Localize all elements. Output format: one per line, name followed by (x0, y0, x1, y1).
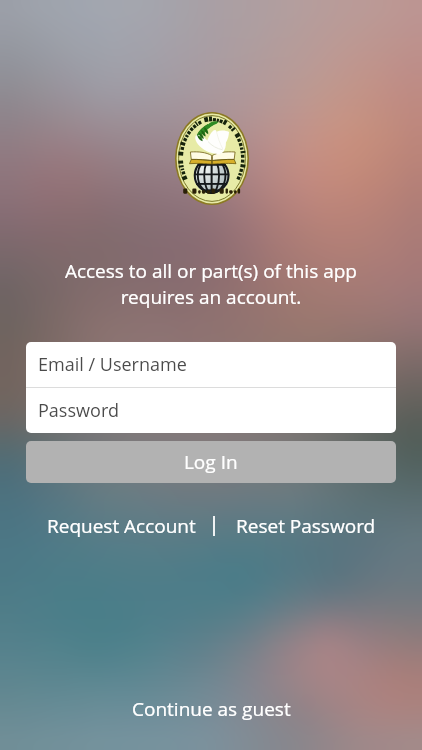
staticText: Continue as guest (132, 696, 291, 722)
button[interactable]: Email / Username (26, 342, 396, 387)
button[interactable]: Reset Password (229, 507, 383, 545)
button[interactable]: Continue as guest (116, 690, 307, 728)
staticText: Request Account (47, 513, 196, 539)
button[interactable]: Request Account (40, 507, 203, 545)
staticText: Log In (184, 449, 238, 475)
button[interactable]: Log In (26, 441, 396, 483)
staticText: Access to all or part(s) of this app req… (0, 258, 422, 310)
staticText: Password (38, 398, 119, 423)
staticText: Email / Username (38, 352, 187, 377)
staticText: Reset Password (236, 513, 376, 539)
button[interactable]: Password (26, 388, 396, 433)
